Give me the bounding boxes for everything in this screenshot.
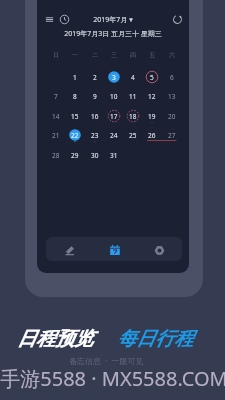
staticText: 27 bbox=[168, 131, 176, 140]
button[interactable]: 17 bbox=[106, 108, 122, 124]
button[interactable]: Settings bbox=[155, 246, 164, 255]
button[interactable]: 31 bbox=[106, 147, 122, 163]
staticText: 5 bbox=[150, 73, 154, 82]
button[interactable]: 11 bbox=[125, 88, 141, 104]
staticText: 日程预览 bbox=[17, 327, 93, 351]
staticText: 18 bbox=[129, 112, 137, 121]
button[interactable]: 25 bbox=[125, 127, 141, 143]
staticText: 1 bbox=[73, 73, 77, 82]
staticText: 19 bbox=[148, 112, 156, 121]
staticText: 30 bbox=[91, 151, 99, 160]
staticText: 21 bbox=[52, 131, 60, 140]
button[interactable]: 26 bbox=[144, 127, 160, 143]
button[interactable]: 3 bbox=[106, 69, 122, 85]
staticText: 28 bbox=[52, 151, 60, 160]
staticText: 备忘信息 · 一眼可见 bbox=[69, 355, 144, 366]
button[interactable]: 10 bbox=[106, 88, 122, 104]
button[interactable]: 9 bbox=[87, 88, 103, 104]
staticText: 日 bbox=[53, 51, 59, 59]
staticText: 每日行程 bbox=[117, 327, 193, 351]
staticText: 6 bbox=[170, 73, 174, 82]
button[interactable]: Edit bbox=[65, 246, 74, 255]
staticText: 五 bbox=[149, 51, 155, 59]
button[interactable]: 14 bbox=[48, 108, 64, 124]
staticText: 25 bbox=[129, 131, 137, 140]
button[interactable]: 27 bbox=[164, 127, 180, 143]
staticText: 12 bbox=[148, 92, 156, 101]
button[interactable]: Menu bbox=[43, 13, 56, 26]
button[interactable]: 20 bbox=[164, 108, 180, 124]
staticText: 3 bbox=[112, 73, 116, 82]
staticText: 2019年7月3日 五月三十 星期三 bbox=[37, 29, 189, 39]
staticText: 4 bbox=[131, 73, 135, 82]
staticText: 31 bbox=[110, 151, 118, 160]
button[interactable]: Refresh bbox=[171, 13, 184, 26]
staticText: 六 bbox=[169, 51, 175, 59]
button[interactable]: 7 bbox=[48, 88, 64, 104]
button[interactable]: 5 bbox=[144, 69, 160, 85]
staticText: 16 bbox=[91, 112, 99, 121]
staticText: 15 bbox=[71, 112, 79, 121]
button[interactable]: 29 bbox=[67, 147, 83, 163]
button[interactable]: 24 bbox=[106, 127, 122, 143]
staticText: 10 bbox=[110, 92, 118, 101]
staticText: 四 bbox=[130, 51, 136, 59]
staticText: 13 bbox=[168, 92, 176, 101]
button[interactable]: 19 bbox=[144, 108, 160, 124]
staticText: 17 bbox=[110, 112, 118, 121]
button[interactable]: 16 bbox=[87, 108, 103, 124]
button[interactable]: 15 bbox=[67, 108, 83, 124]
button[interactable]: Calendar bbox=[110, 245, 120, 255]
staticText: 20 bbox=[168, 112, 176, 121]
button[interactable]: 2 bbox=[87, 69, 103, 85]
staticText: 7 bbox=[54, 92, 58, 101]
button[interactable]: Help bbox=[58, 13, 71, 26]
button[interactable]: 30 bbox=[87, 147, 103, 163]
staticText: 26 bbox=[148, 131, 156, 140]
staticText: 二 bbox=[92, 51, 98, 59]
button[interactable]: 12 bbox=[144, 88, 160, 104]
staticText: 22 bbox=[71, 131, 79, 140]
staticText: 手游5588 · MX5588.COM bbox=[0, 365, 225, 392]
button[interactable]: 28 bbox=[48, 147, 64, 163]
button[interactable]: 23 bbox=[87, 127, 103, 143]
staticText: 14 bbox=[52, 112, 60, 121]
staticText: 2 bbox=[93, 73, 97, 82]
button[interactable]: 6 bbox=[164, 69, 180, 85]
button[interactable]: 18 bbox=[125, 108, 141, 124]
staticText: 2019年7月 ▾ bbox=[37, 15, 189, 25]
button[interactable]: 1 bbox=[67, 69, 83, 85]
staticText: 9 bbox=[93, 92, 97, 101]
staticText: 一 bbox=[72, 51, 78, 59]
button[interactable]: 13 bbox=[164, 88, 180, 104]
staticText: 三 bbox=[111, 51, 117, 59]
button[interactable]: 4 bbox=[125, 69, 141, 85]
staticText: 29 bbox=[71, 151, 79, 160]
staticText: 8 bbox=[73, 92, 77, 101]
button[interactable]: 8 bbox=[67, 88, 83, 104]
staticText: 11 bbox=[129, 92, 137, 101]
button[interactable]: 21 bbox=[48, 127, 64, 143]
staticText: 24 bbox=[110, 131, 118, 140]
staticText: 23 bbox=[91, 131, 99, 140]
button[interactable]: 22 bbox=[67, 127, 83, 143]
